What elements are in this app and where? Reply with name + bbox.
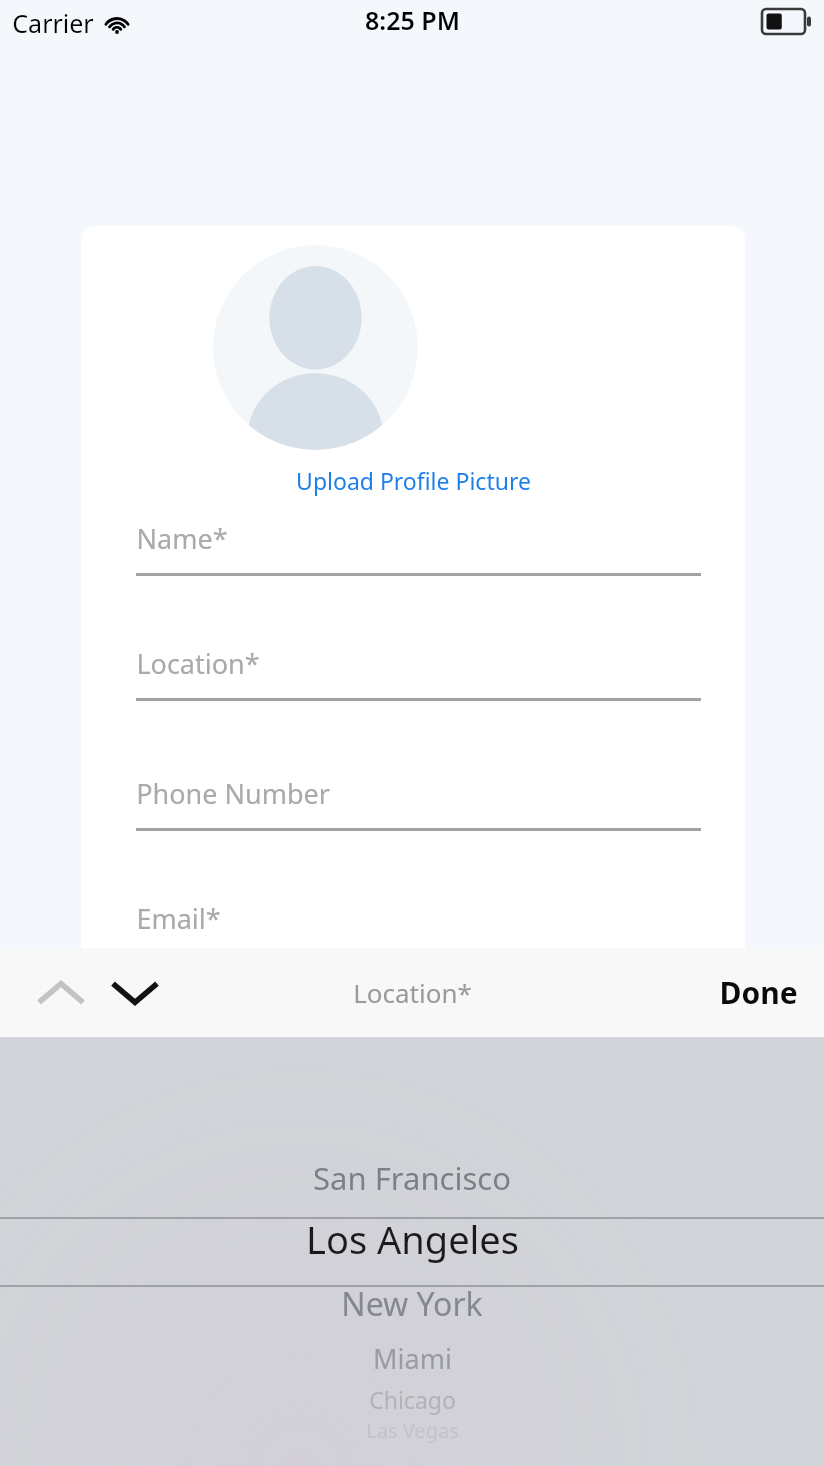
staticText: Upload Profile Picture bbox=[296, 465, 531, 496]
staticText: Location* bbox=[353, 975, 472, 1010]
button[interactable]: Phone Number bbox=[136, 769, 701, 831]
staticText: Chicago bbox=[369, 1384, 456, 1415]
staticText: Las Vegas bbox=[366, 1417, 459, 1444]
staticText: Done bbox=[719, 972, 798, 1013]
button[interactable]: Done bbox=[719, 972, 798, 1013]
button[interactable]: Name* bbox=[136, 514, 701, 576]
button[interactable]: Location* bbox=[136, 639, 701, 701]
staticText: San Francisco bbox=[313, 1157, 511, 1199]
staticText: Location* bbox=[136, 645, 260, 682]
button[interactable]: San Francisco bbox=[0, 1037, 824, 1466]
staticText: Miami bbox=[373, 1340, 452, 1377]
staticText: Carrier bbox=[12, 6, 94, 40]
staticText: Phone Number bbox=[136, 775, 330, 812]
button[interactable]: Upload Profile Picture bbox=[81, 462, 745, 498]
button[interactable]: Previous field bbox=[30, 948, 92, 1037]
button[interactable]: Profile picture bbox=[213, 245, 418, 450]
staticText: Email* bbox=[136, 900, 221, 937]
staticText: Los Angeles bbox=[306, 1213, 519, 1265]
staticText: 8:25 PM bbox=[365, 3, 460, 37]
staticText: New York bbox=[341, 1282, 483, 1326]
button[interactable]: Next field bbox=[104, 948, 166, 1037]
button[interactable]: Email* bbox=[136, 894, 701, 956]
staticText: Name* bbox=[136, 520, 228, 557]
